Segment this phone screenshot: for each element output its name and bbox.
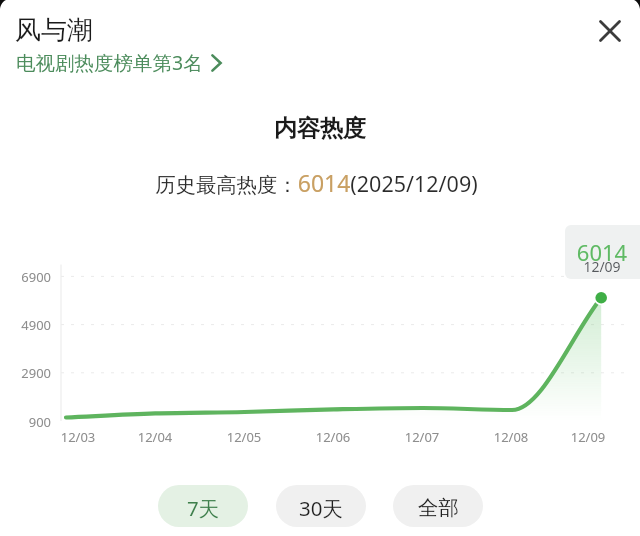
staticText: 全部 xyxy=(418,495,459,521)
staticText: 2900 xyxy=(10,364,51,382)
staticText: 12/07 xyxy=(404,428,440,446)
button[interactable]: 电视剧热度榜单第3名 xyxy=(15,47,223,78)
button[interactable]: 7天 xyxy=(158,485,248,527)
staticText: 6900 xyxy=(10,268,51,286)
staticText: 4900 xyxy=(10,316,51,334)
staticText: 6014 xyxy=(567,237,637,267)
staticText: 电视剧热度榜单第3名 xyxy=(16,49,203,76)
button[interactable]: 全部 xyxy=(393,485,483,527)
staticText: 12/03 xyxy=(60,428,96,446)
staticText: 12/08 xyxy=(493,428,529,446)
staticText: 12/09 xyxy=(567,257,637,276)
staticText: 900 xyxy=(10,413,51,431)
staticText: 风与潮 xyxy=(15,14,93,47)
staticText: 12/06 xyxy=(315,428,351,446)
staticText: 12/04 xyxy=(137,428,173,446)
staticText: 12/09 xyxy=(570,428,606,446)
staticText: 历史最高热度：6014(2025/12/09) xyxy=(155,167,478,198)
staticText: 内容热度 xyxy=(274,114,366,143)
button[interactable]: Close xyxy=(592,13,628,49)
button[interactable]: 30天 xyxy=(276,485,366,527)
staticText: 30天 xyxy=(299,494,343,522)
staticText: 7天 xyxy=(187,494,220,522)
staticText: 12/05 xyxy=(226,428,262,446)
